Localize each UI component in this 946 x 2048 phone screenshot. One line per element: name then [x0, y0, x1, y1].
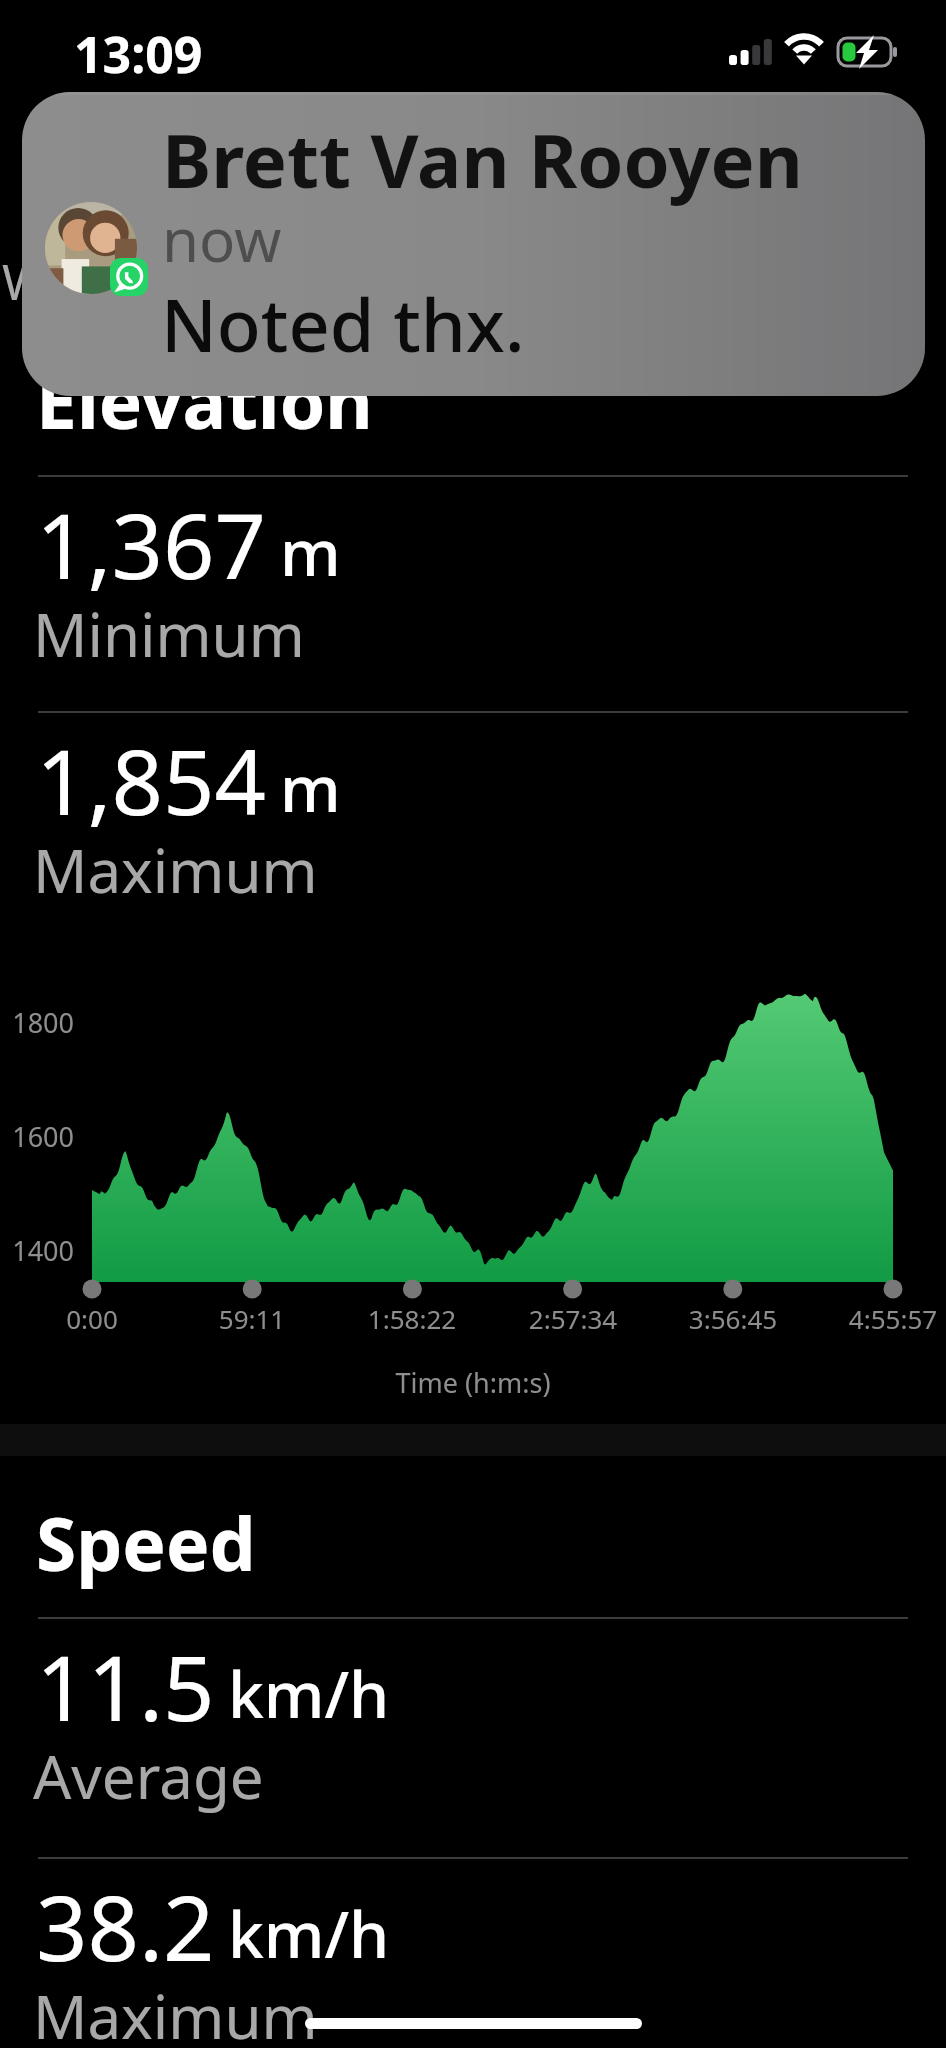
staticText: Brett Van Rooyen [162, 109, 803, 210]
staticText: m [280, 744, 341, 831]
other: WhatsApp [110, 258, 148, 296]
staticText: 59:11 [122, 1301, 382, 1336]
staticText: 1,854 [36, 719, 267, 842]
staticText: 0:00 [0, 1301, 222, 1336]
staticText: m [280, 508, 341, 595]
staticText: Elevation [36, 351, 373, 450]
staticText: 1600 [0, 1118, 74, 1155]
staticText: 1400 [0, 1232, 74, 1269]
staticText: Maximum [33, 829, 318, 911]
staticText: Minimum [33, 593, 305, 675]
staticText: 13:09 [74, 20, 203, 88]
button[interactable]: 11.5 [0, 1602, 946, 1838]
staticText: 3:56:45 [603, 1301, 863, 1336]
button[interactable]: 1,367 [0, 460, 946, 696]
other: Contact photo [45, 202, 137, 294]
button[interactable]: 1,854 [0, 696, 946, 932]
staticText: 2:57:34 [443, 1301, 703, 1336]
staticText: now [162, 198, 282, 280]
staticText: Maximum [33, 1975, 318, 2048]
staticText: 4:55:57 [763, 1301, 946, 1336]
other: Signal, Wi-Fi and battery status [725, 30, 915, 80]
staticText: 1,367 [36, 483, 267, 606]
staticText: Average [33, 1735, 264, 1817]
staticText: Time (h:m:s) [0, 1364, 946, 1401]
staticText: km/h [228, 1890, 390, 1977]
staticText: 38.2 [36, 1865, 215, 1988]
button[interactable]: Contact photo [22, 92, 925, 396]
staticText: Weighted average [2, 247, 429, 315]
button[interactable]: 38.2 [0, 1842, 946, 2048]
staticText: Speed [36, 1493, 256, 1592]
staticText: 11.5 [36, 1625, 215, 1748]
staticText: 1:58:22 [282, 1301, 542, 1336]
staticText: 1800 [0, 1004, 74, 1041]
staticText: Noted thx. [161, 275, 525, 373]
staticText: km/h [228, 1650, 390, 1737]
